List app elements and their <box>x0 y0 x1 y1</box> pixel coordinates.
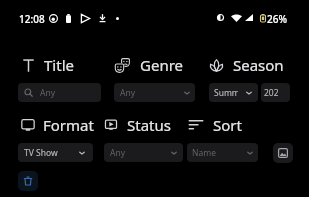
staticText: Season <box>233 55 284 75</box>
staticText: Status <box>127 115 171 135</box>
button[interactable]: Summer <box>209 83 258 102</box>
button[interactable]: Genre <box>115 55 184 75</box>
staticText: Any <box>120 87 136 99</box>
button[interactable]: Sort <box>188 115 242 135</box>
button[interactable]: Clear filters <box>18 171 38 191</box>
staticText: 2023 <box>264 87 278 99</box>
button[interactable]: Title <box>22 55 74 75</box>
staticText: TV Show <box>24 147 58 159</box>
staticText: 12:08 <box>19 12 45 26</box>
button[interactable]: 2023 <box>261 83 290 102</box>
button[interactable]: Name <box>187 143 258 162</box>
button[interactable]: Format <box>21 115 94 135</box>
staticText: 26% <box>267 12 287 26</box>
staticText: Any <box>40 87 56 99</box>
staticText: Summer <box>214 87 238 99</box>
button[interactable]: Any <box>114 83 195 102</box>
button[interactable]: Cover image <box>273 143 293 163</box>
staticText: Any <box>110 147 126 159</box>
staticText: Name <box>192 147 216 159</box>
staticText: Title <box>44 55 74 75</box>
button[interactable]: Any <box>18 83 101 102</box>
staticText: Sort <box>213 115 242 135</box>
staticText: Genre <box>140 55 184 75</box>
button[interactable]: Any <box>104 143 183 162</box>
staticText: Format <box>43 115 94 135</box>
button[interactable]: Season <box>210 55 284 75</box>
button[interactable]: Status <box>105 115 171 135</box>
button[interactable]: TV Show <box>18 143 93 162</box>
